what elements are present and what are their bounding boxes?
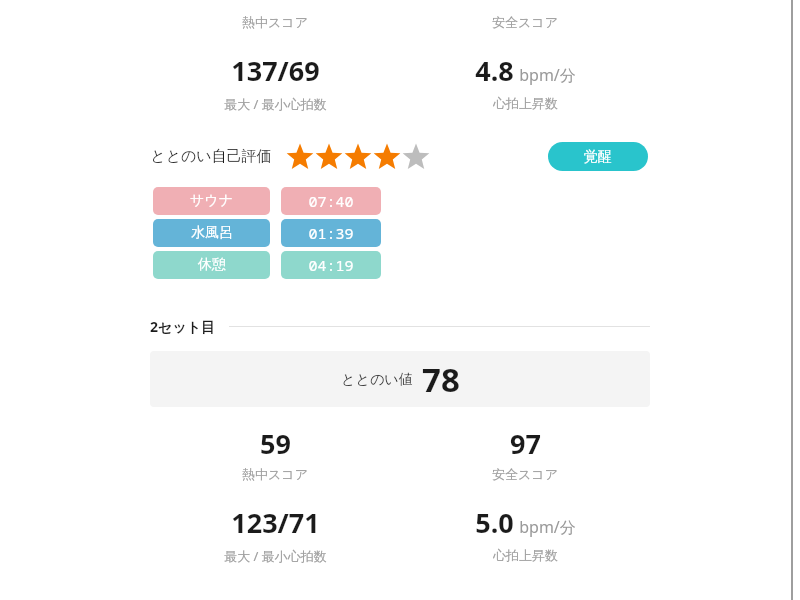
other: Rating star 3	[344, 143, 372, 171]
staticText: 04:19	[308, 255, 354, 275]
staticText: 休憩	[198, 256, 226, 274]
staticText: 心拍上昇数	[493, 95, 558, 111]
button[interactable]: 07:40	[281, 187, 381, 215]
staticText: ととのい値	[341, 371, 413, 389]
button[interactable]: 覚醒	[548, 142, 648, 171]
staticText: 最大 / 最小心拍数	[224, 547, 327, 565]
staticText: 07:40	[308, 191, 354, 211]
staticText: 59	[260, 425, 291, 462]
other: Rating star 2	[315, 143, 343, 171]
staticText: 安全スコア	[492, 466, 558, 482]
other: Rating star 5	[402, 143, 430, 171]
staticText: 熱中スコア	[242, 466, 308, 482]
staticText: bpm/分	[519, 64, 576, 86]
staticText: ととのい自己評価	[150, 147, 272, 166]
staticText: 78	[422, 357, 460, 402]
staticText: 最大 / 最小心拍数	[224, 95, 327, 113]
staticText: 心拍上昇数	[493, 547, 558, 563]
staticText: サウナ	[190, 192, 233, 210]
button[interactable]: Rating star 5	[401, 142, 430, 171]
staticText: 安全スコア	[492, 14, 558, 30]
staticText: 水風呂	[191, 224, 233, 242]
staticText: 4.8	[475, 52, 514, 89]
button[interactable]: 01:39	[281, 219, 381, 247]
button[interactable]: Rating star 1	[285, 142, 314, 171]
other: Rating star 4	[373, 143, 401, 171]
button[interactable]: Rating star 4	[372, 142, 401, 171]
button[interactable]: サウナ	[153, 187, 270, 215]
button[interactable]: Rating star 2	[314, 142, 343, 171]
button[interactable]: Rating star 3	[343, 142, 372, 171]
staticText: 5.0	[475, 504, 514, 541]
button[interactable]: 04:19	[281, 251, 381, 279]
staticText: 2セット目	[150, 317, 215, 336]
staticText: 覚醒	[584, 148, 612, 166]
button[interactable]: 水風呂	[153, 219, 270, 247]
button[interactable]: 休憩	[153, 251, 270, 279]
staticText: 01:39	[308, 223, 354, 243]
staticText: 137/69	[231, 52, 320, 89]
staticText: bpm/分	[519, 516, 576, 538]
staticText: 熱中スコア	[242, 14, 308, 30]
button[interactable]: ととのい値	[150, 351, 650, 407]
other: Rating star 1	[286, 143, 314, 171]
staticText: 97	[510, 425, 541, 462]
staticText: 123/71	[231, 504, 320, 541]
